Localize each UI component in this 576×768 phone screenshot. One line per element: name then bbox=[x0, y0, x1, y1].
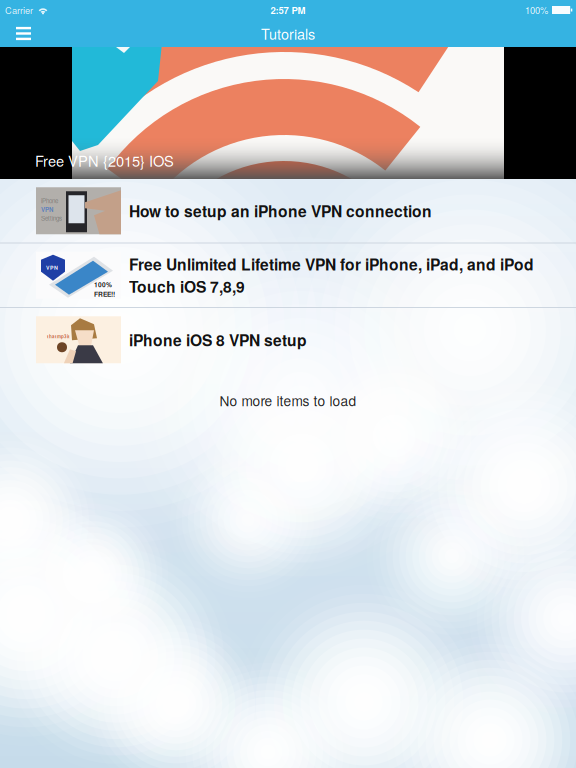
button[interactable]: VPN bbox=[0, 243, 576, 307]
staticText: No more items to load bbox=[219, 390, 356, 410]
staticText: Free Unlimited Lifetime VPN for iPhone, … bbox=[129, 253, 534, 298]
staticText: FREE!! bbox=[94, 289, 115, 299]
staticText: Tutorials bbox=[261, 23, 315, 44]
staticText: 2:57 PM bbox=[270, 3, 305, 17]
staticText: How to setup an iPhone VPN connection bbox=[129, 200, 432, 222]
button[interactable]: Menu bbox=[8, 21, 39, 46]
staticText: thatmp3it bbox=[47, 333, 70, 340]
staticText: 100% bbox=[94, 280, 112, 289]
staticText: Free VPN {2015} IOS bbox=[35, 150, 174, 171]
button[interactable]: thatmp3it bbox=[0, 308, 576, 371]
staticText: VPN bbox=[46, 264, 58, 271]
staticText: VPN bbox=[41, 205, 53, 214]
staticText: Carrier bbox=[5, 3, 33, 17]
button[interactable]: iPhone bbox=[0, 179, 576, 242]
staticText: 100% bbox=[525, 3, 548, 17]
staticText: Settings bbox=[41, 214, 62, 223]
staticText: iPhone iOS 8 VPN setup bbox=[129, 329, 307, 351]
staticText: iPhone bbox=[41, 196, 58, 205]
